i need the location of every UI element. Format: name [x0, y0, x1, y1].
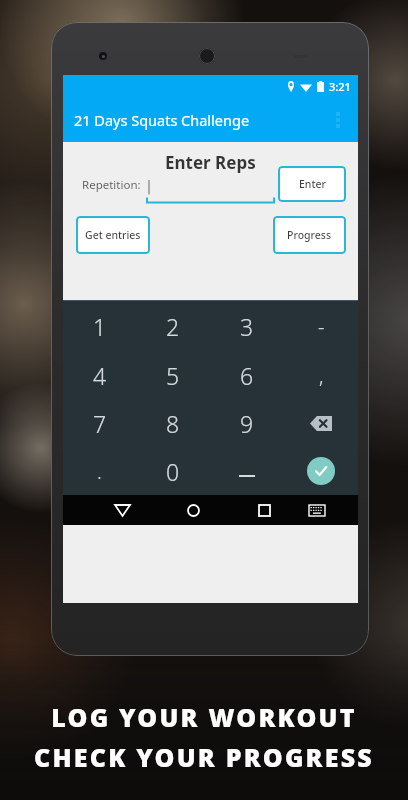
staticText: 5	[166, 360, 180, 391]
button[interactable]: ,	[284, 351, 358, 399]
button[interactable]: 0	[136, 447, 210, 495]
staticText: 0	[166, 456, 180, 487]
button[interactable]: Get entries	[76, 216, 150, 254]
staticText: Get entries	[85, 228, 141, 242]
button[interactable]: -	[284, 302, 358, 351]
staticText: 4	[93, 360, 107, 391]
staticText: -	[318, 313, 325, 340]
button[interactable]: Recent apps	[229, 495, 300, 525]
staticText: Repetition:	[82, 177, 141, 193]
staticText: ,	[319, 362, 324, 389]
button[interactable]: 6	[210, 351, 284, 399]
staticText: LOG YOUR WORKOUT	[51, 700, 357, 734]
button[interactable]: Switch keyboard	[300, 495, 334, 525]
staticText: 3:21	[329, 79, 351, 94]
button[interactable]: .	[63, 447, 136, 495]
button[interactable]: 8	[136, 399, 210, 447]
staticText: .	[97, 458, 102, 485]
staticText: 9	[240, 408, 254, 439]
staticText: 3	[240, 311, 254, 342]
button[interactable]: 3	[210, 302, 284, 351]
button[interactable]: Home	[158, 495, 229, 525]
button[interactable]: Progress	[273, 216, 346, 254]
button[interactable]: 2	[136, 302, 210, 351]
button[interactable]: 9	[210, 399, 284, 447]
button[interactable]: Done	[284, 447, 358, 495]
staticText: 2	[166, 311, 180, 342]
staticText: 6	[240, 360, 254, 391]
button[interactable]: Back	[87, 495, 158, 525]
staticText: Enter Reps	[165, 151, 256, 174]
button[interactable]: Enter	[278, 166, 346, 202]
staticText: Progress	[287, 228, 332, 242]
button[interactable]: 7	[63, 399, 136, 447]
staticText: 1	[93, 311, 107, 342]
staticText: 7	[93, 408, 107, 439]
staticText: 8	[166, 408, 180, 439]
button[interactable]: 5	[136, 351, 210, 399]
button[interactable]: More options	[322, 104, 354, 136]
staticText: CHECK YOUR PROGRESS	[34, 740, 374, 774]
button[interactable]: 1	[63, 302, 136, 351]
staticText: Enter	[299, 177, 326, 191]
button[interactable]: Backspace	[284, 399, 358, 447]
button[interactable]: 4	[63, 351, 136, 399]
button[interactable]	[210, 447, 284, 495]
staticText: 21 Days Squats Challenge	[74, 110, 250, 130]
